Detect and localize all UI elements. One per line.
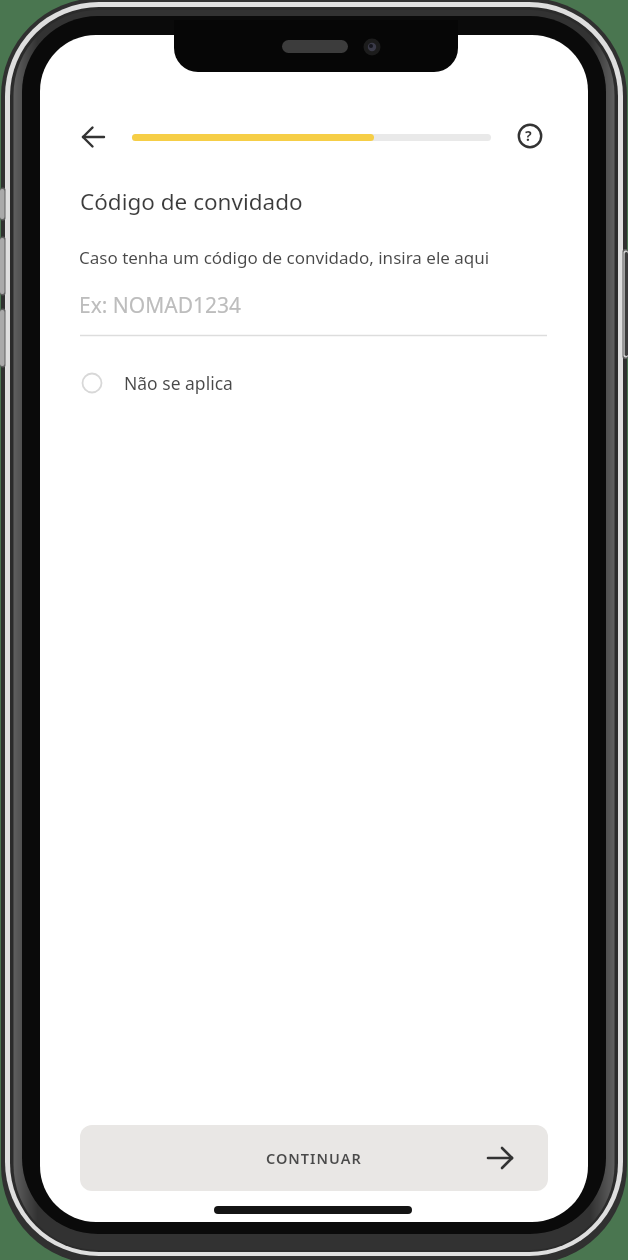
staticText: Ex: NOMAD1234 [79, 291, 242, 320]
staticText: Não se aplica [124, 371, 233, 395]
button[interactable]: CONTINUAR [80, 1125, 548, 1191]
staticText: Código de convidado [80, 186, 303, 217]
button[interactable] [79, 286, 548, 336]
staticText: CONTINUAR [266, 1148, 362, 1168]
button[interactable] [75, 120, 115, 154]
button[interactable] [512, 118, 548, 154]
staticText: Caso tenha um código de convidado, insir… [79, 246, 490, 269]
staticText: ? [525, 126, 532, 145]
button[interactable] [79, 362, 299, 404]
